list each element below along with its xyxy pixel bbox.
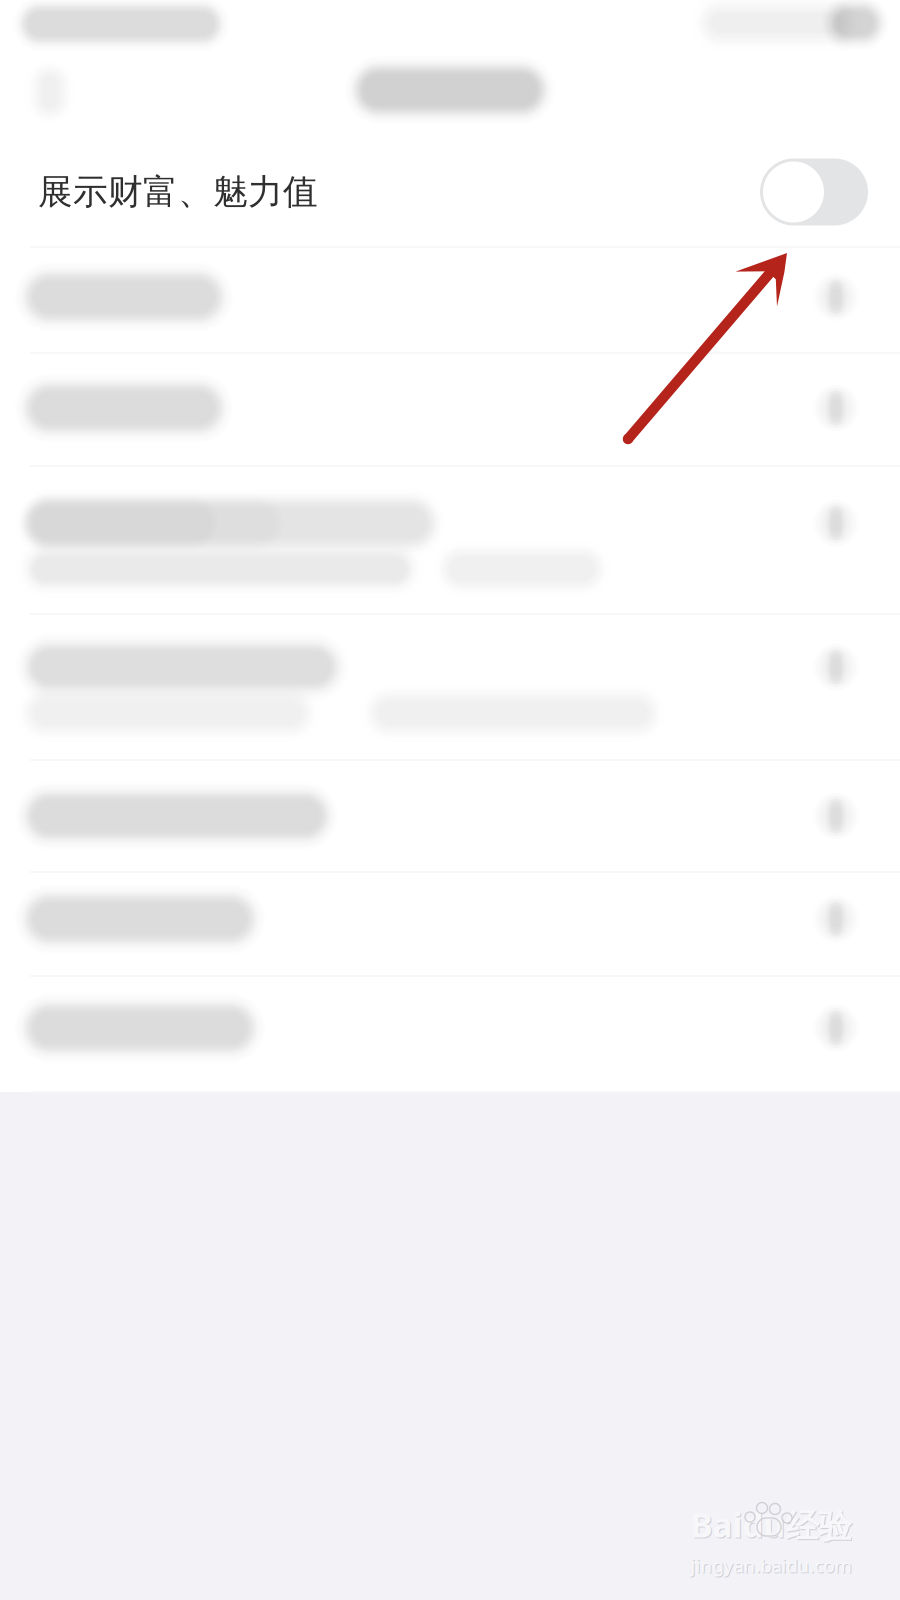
button[interactable] xyxy=(0,0,900,1600)
staticText: 展示财富、魅力值 xyxy=(38,171,318,213)
staticText: jingyan.baidu.com xyxy=(691,1554,852,1579)
staticText: jingyan.baidu.com xyxy=(690,1553,851,1578)
button[interactable] xyxy=(0,0,900,1600)
staticText: Baidu经验 xyxy=(690,1502,851,1547)
button[interactable] xyxy=(0,0,900,1600)
button[interactable] xyxy=(0,0,900,1600)
button[interactable] xyxy=(0,0,900,1600)
button[interactable]: 展示财富、魅力值 xyxy=(0,134,900,250)
staticText: Baidu经验 xyxy=(691,1503,852,1548)
button[interactable] xyxy=(0,0,900,1600)
button[interactable] xyxy=(0,0,900,1600)
